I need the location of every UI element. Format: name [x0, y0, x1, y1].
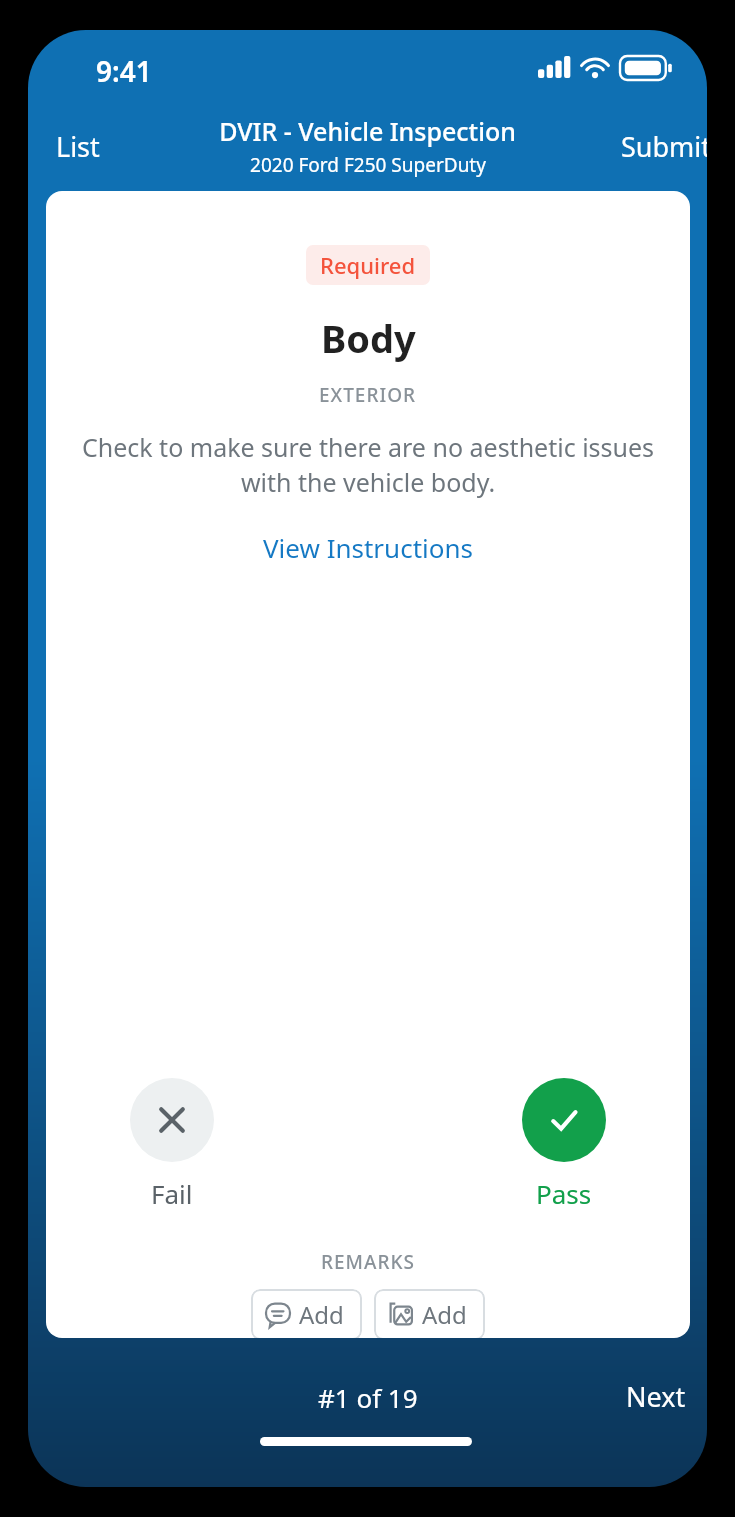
staticText: Fail: [151, 1176, 193, 1211]
staticText: Add: [299, 1298, 344, 1331]
staticText: Next: [626, 1378, 686, 1415]
button[interactable]: Add: [374, 1289, 485, 1338]
button[interactable]: Submit: [611, 122, 707, 171]
staticText: DVIR - Vehicle Inspection: [219, 114, 516, 148]
staticText: #1 of 19: [318, 1380, 418, 1415]
button[interactable]: Fail: [122, 1074, 222, 1215]
staticText: Required: [320, 250, 416, 280]
staticText: REMARKS: [321, 1249, 415, 1275]
staticText: EXTERIOR: [319, 382, 417, 408]
staticText: View Instructions: [263, 530, 474, 565]
staticText: 9:41: [96, 52, 152, 90]
staticText: Add: [422, 1298, 467, 1331]
staticText: Pass: [536, 1176, 592, 1211]
staticText: Body: [321, 312, 416, 364]
staticText: Submit: [621, 128, 707, 165]
staticText: Check to make sure there are no aestheti…: [72, 430, 664, 500]
button[interactable]: Pass: [514, 1074, 614, 1215]
button[interactable]: List: [44, 122, 112, 171]
button[interactable]: Add: [251, 1289, 362, 1338]
staticText: List: [56, 128, 100, 165]
button[interactable]: View Instructions: [253, 526, 484, 569]
staticText: 2020 Ford F250 SuperDuty: [250, 152, 486, 178]
button[interactable]: Next: [616, 1372, 696, 1421]
